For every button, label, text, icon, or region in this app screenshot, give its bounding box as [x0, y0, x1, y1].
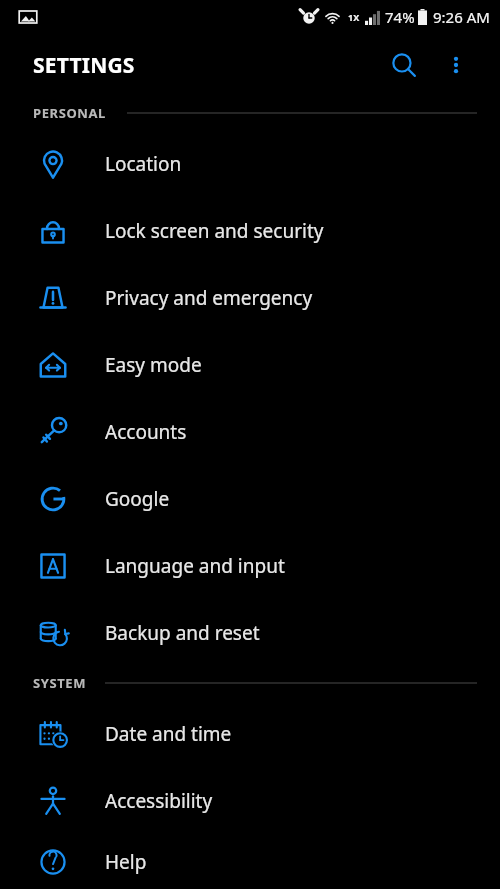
- button[interactable]: Easy mode: [0, 331, 500, 398]
- staticText: 74%: [385, 7, 415, 27]
- button[interactable]: Language and input: [0, 532, 500, 599]
- staticText: Lock screen and security: [105, 218, 324, 244]
- staticText: Date and time: [105, 721, 232, 747]
- staticText: 9:26 AM: [433, 7, 490, 27]
- button[interactable]: Location: [0, 130, 500, 197]
- staticText: Easy mode: [105, 352, 202, 378]
- button[interactable]: Help: [0, 834, 500, 889]
- staticText: Location: [105, 151, 182, 177]
- button[interactable]: Privacy and emergency: [0, 264, 500, 331]
- button[interactable]: Google: [0, 465, 500, 532]
- staticText: 1X: [348, 11, 360, 23]
- staticText: SYSTEM: [33, 674, 87, 692]
- button[interactable]: Backup and reset: [0, 599, 500, 666]
- button[interactable]: Search: [382, 43, 426, 87]
- staticText: PERSONAL: [33, 104, 106, 122]
- staticText: Accessibility: [105, 788, 213, 814]
- staticText: Help: [105, 849, 147, 875]
- staticText: Backup and reset: [105, 620, 260, 646]
- button[interactable]: Accessibility: [0, 767, 500, 834]
- staticText: Privacy and emergency: [105, 285, 313, 311]
- staticText: Language and input: [105, 553, 285, 579]
- button[interactable]: Date and time: [0, 700, 500, 767]
- staticText: SETTINGS: [33, 51, 135, 80]
- staticText: Google: [105, 486, 170, 512]
- button[interactable]: More options: [434, 43, 478, 87]
- staticText: Accounts: [105, 419, 187, 445]
- button[interactable]: Accounts: [0, 398, 500, 465]
- button[interactable]: Lock screen and security: [0, 197, 500, 264]
